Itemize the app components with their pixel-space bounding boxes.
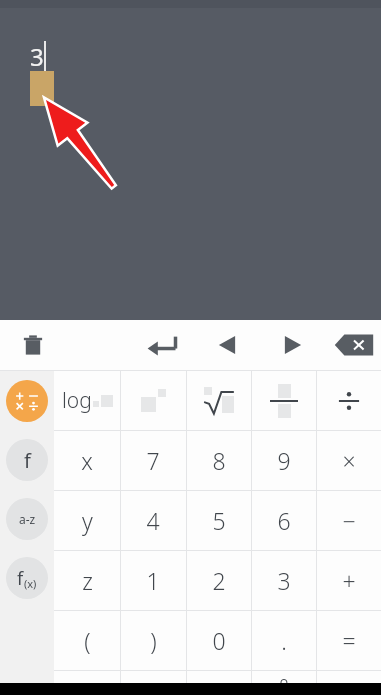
staticText: 3	[30, 40, 44, 73]
button[interactable]: f	[0, 548, 54, 607]
button[interactable]: 0	[186, 611, 251, 670]
staticText: 3	[277, 565, 291, 596]
staticText: (x)	[24, 576, 37, 591]
button[interactable]	[0, 371, 54, 430]
button[interactable]: log	[54, 371, 120, 430]
button[interactable]: 2	[186, 551, 251, 610]
staticText: a-z	[19, 511, 36, 527]
button[interactable]: f	[0, 430, 54, 489]
button[interactable]	[120, 371, 186, 430]
button[interactable]: Move right	[260, 320, 326, 370]
staticText: f	[17, 566, 24, 591]
button[interactable]: °	[251, 671, 316, 683]
button[interactable]: 3	[251, 551, 316, 610]
button[interactable]: Move left	[194, 320, 260, 370]
button[interactable]: z	[54, 551, 120, 610]
staticText: .	[281, 625, 287, 656]
button[interactable]: 4	[120, 491, 186, 550]
button[interactable]	[316, 671, 381, 683]
button[interactable]	[316, 371, 381, 430]
button[interactable]: x	[54, 431, 120, 490]
staticText: (	[84, 625, 91, 656]
staticText: −	[342, 505, 356, 536]
staticText: 6	[277, 505, 291, 536]
staticText: y	[82, 505, 93, 536]
button[interactable]	[251, 371, 316, 430]
button[interactable]: 1	[120, 551, 186, 610]
staticText: 7	[146, 445, 160, 476]
staticText: °	[279, 671, 289, 683]
staticText: x	[81, 445, 93, 476]
staticText: f	[24, 447, 31, 474]
staticText: 2	[212, 565, 226, 596]
staticText: log	[62, 386, 92, 415]
staticText: ×	[342, 445, 356, 476]
button[interactable]: 8	[186, 431, 251, 490]
staticText: 9	[277, 445, 291, 476]
staticText: 4	[146, 505, 160, 536]
staticText: 0	[212, 625, 226, 656]
button[interactable]: 6	[251, 491, 316, 550]
button[interactable]: +	[316, 551, 381, 610]
staticText: 8	[212, 445, 226, 476]
button[interactable]: =	[316, 611, 381, 670]
button[interactable]	[120, 671, 186, 683]
staticText: =	[342, 625, 356, 656]
button[interactable]: (	[54, 611, 120, 670]
button[interactable]: Backspace	[326, 320, 381, 370]
button[interactable]: .	[251, 611, 316, 670]
button[interactable]: )	[120, 611, 186, 670]
button[interactable]: −	[316, 491, 381, 550]
staticText: )	[150, 625, 157, 656]
staticText: +	[342, 565, 356, 596]
staticText: z	[82, 565, 93, 596]
button[interactable]: a-z	[0, 489, 54, 548]
button[interactable]: 5	[186, 491, 251, 550]
button[interactable]: 9	[251, 431, 316, 490]
staticText: 5	[212, 505, 226, 536]
staticText: 1	[146, 565, 160, 596]
button[interactable]: 7	[120, 431, 186, 490]
button[interactable]: y	[54, 491, 120, 550]
button[interactable]: ×	[316, 431, 381, 490]
button[interactable]: Clear	[0, 320, 66, 370]
button[interactable]	[186, 371, 251, 430]
button[interactable]: Enter	[130, 320, 194, 370]
button[interactable]	[186, 671, 251, 683]
